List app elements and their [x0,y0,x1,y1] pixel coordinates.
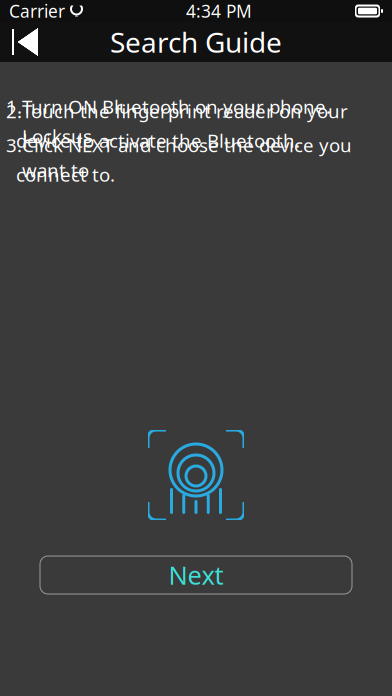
staticText: 1. [6,94,22,119]
staticText: 2. [6,99,22,123]
button[interactable]: Next [40,556,352,594]
staticText: Carrier [9,0,65,22]
staticText: Touch the fingerprint reader on your Loc… [22,99,348,148]
button[interactable]: Back [0,22,54,62]
staticText: 4:34 PM [186,0,252,22]
staticText: Turn ON Bluetooth on your phone. [22,94,331,119]
staticText: 3. [6,133,22,157]
staticText: connect to. [16,162,115,187]
staticText: Next [168,558,223,592]
staticText: Search Guide [110,23,282,61]
staticText: Click NEXT and choose the device you wan… [22,133,352,182]
staticText [6,128,16,153]
staticText: device to activate the Bluetooth. [16,128,300,153]
